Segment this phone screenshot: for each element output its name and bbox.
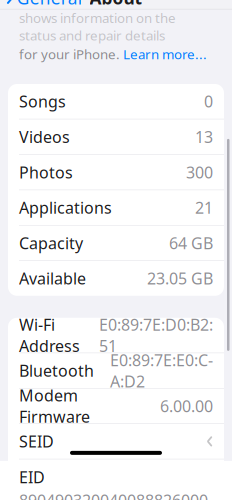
- staticText: shows information on the status and repa…: [19, 9, 176, 44]
- staticText: Learn more...: [123, 45, 207, 63]
- staticText: 89049032004008882600018384471477: [19, 490, 208, 500]
- staticText: Modem Firmware: [19, 385, 90, 427]
- button[interactable]: General: [0, 0, 82, 14]
- staticText: 13: [195, 126, 213, 147]
- staticText: Applications: [19, 197, 112, 218]
- button[interactable]: Songs: [8, 84, 224, 119]
- staticText: 6.00.00: [160, 395, 213, 417]
- staticText: Bluetooth: [19, 360, 94, 381]
- staticText: About: [89, 0, 142, 9]
- staticText: for your iPhone.: [19, 45, 123, 63]
- staticText: EID: [19, 466, 45, 488]
- button[interactable]: Learn more...: [123, 45, 207, 63]
- staticText: Videos: [19, 126, 70, 147]
- button[interactable]: EID: [8, 459, 224, 500]
- staticText: Capacity: [19, 232, 83, 254]
- staticText: 300: [186, 162, 213, 183]
- staticText: 0: [204, 91, 213, 112]
- button[interactable]: Applications: [8, 190, 224, 225]
- staticText: 64 GB: [169, 232, 213, 254]
- staticText: Available: [19, 268, 86, 289]
- staticText: 21: [195, 197, 213, 218]
- staticText: Photos: [19, 162, 73, 183]
- staticText: E0:89:7E:D0:B2:51: [99, 314, 213, 356]
- staticText: Songs: [19, 91, 66, 112]
- button[interactable]: SEID: [8, 424, 224, 459]
- staticText: Wi-Fi Address: [19, 314, 80, 356]
- staticText: SEID: [19, 431, 54, 452]
- button[interactable]: Modem Firmware: [8, 389, 224, 423]
- staticText: E0:89:7E:E0:CA:D2: [110, 349, 213, 392]
- button[interactable]: Videos: [8, 119, 224, 154]
- button[interactable]: Bluetooth: [8, 353, 224, 388]
- button[interactable]: Wi-Fi Address: [8, 318, 224, 353]
- button[interactable]: Available: [8, 261, 224, 296]
- button[interactable]: Photos: [8, 155, 224, 190]
- button[interactable]: Capacity: [8, 226, 224, 260]
- staticText: General: [17, 0, 82, 9]
- staticText: 23.05 GB: [147, 268, 213, 289]
